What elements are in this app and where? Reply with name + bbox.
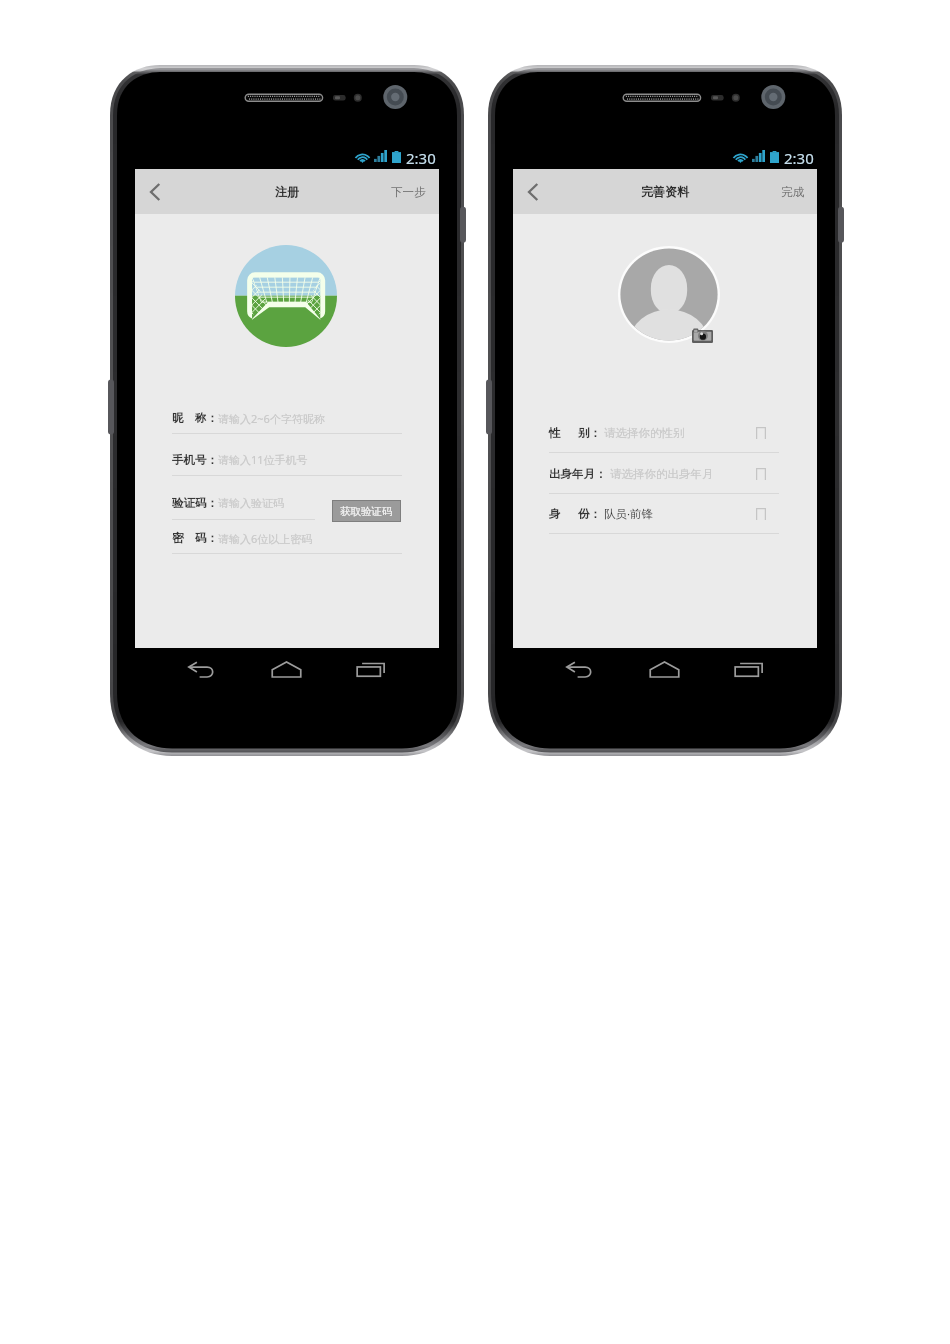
staticText: 注册 (275, 184, 299, 199)
button[interactable]: 出身年月： (549, 466, 766, 482)
staticText: 密 码： (172, 530, 218, 546)
staticText: 完善资料 (641, 184, 689, 199)
staticText: 2:30 (784, 148, 814, 168)
button[interactable]: Back (181, 656, 223, 683)
staticText: 下一步 (391, 185, 426, 199)
staticText: 昵 称： (172, 410, 218, 426)
staticText: 请输入11位手机号 (218, 452, 308, 467)
staticText: 队员·前锋 (601, 506, 654, 522)
staticText: 请输入6位以上密码 (218, 531, 313, 546)
button[interactable]: Back (559, 656, 601, 683)
button[interactable]: Recents (350, 656, 391, 683)
button[interactable]: 下一步 (385, 177, 432, 207)
button[interactable]: 完成 (775, 177, 810, 207)
staticText: 验证码： (172, 496, 218, 510)
staticText: 请输入2~6个字符昵称 (218, 411, 325, 426)
button[interactable]: Change profile photo (692, 328, 713, 343)
staticText: 请输入验证码 (218, 496, 284, 510)
staticText: 2:30 (406, 148, 436, 168)
button[interactable]: 获取验证码 (332, 500, 401, 522)
staticText: 出身年月： (549, 467, 607, 481)
button[interactable]: Recents (728, 656, 769, 683)
staticText: 获取验证码 (340, 505, 393, 518)
button[interactable]: Back (513, 170, 555, 214)
staticText: 性 别： (549, 425, 601, 441)
button[interactable]: 性 别： (549, 425, 766, 441)
button[interactable]: 身 份： (549, 506, 766, 522)
staticText: 请选择你的出身年月 (607, 466, 714, 482)
staticText: 身 份： (549, 506, 601, 522)
staticText: 请选择你的性别 (601, 425, 685, 441)
staticText: 完成 (781, 185, 804, 199)
button[interactable]: Home (265, 655, 308, 684)
button[interactable]: Home (643, 655, 686, 684)
button[interactable]: Back (135, 170, 177, 214)
staticText: 手机号： (172, 453, 218, 467)
